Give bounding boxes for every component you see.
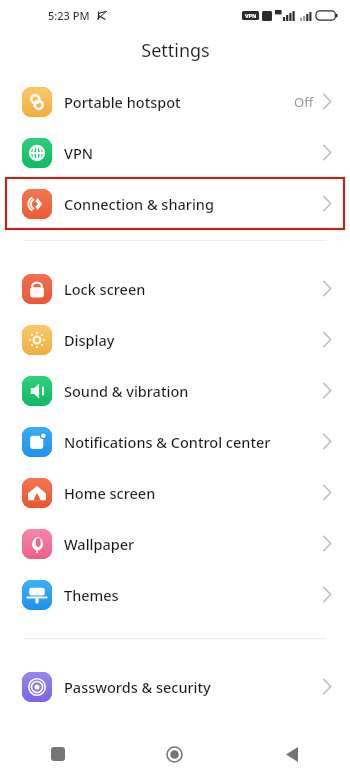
button[interactable]: Notifications & Control center [0,416,350,467]
staticText: Connection & sharing [64,194,214,214]
staticText: Settings [141,38,210,63]
staticText: Notifications & Control center [64,432,271,452]
button[interactable]: Display [0,314,350,365]
button[interactable]: Connection & sharing [6,178,344,229]
staticText: Passwords & security [64,677,211,697]
button[interactable]: Themes [0,569,350,620]
staticText: Portable hotspot [64,92,181,112]
button[interactable]: Sound & vibration [0,365,350,416]
staticText: VPN [64,143,94,163]
button[interactable]: Passwords & security [0,661,350,712]
staticText: Sound & vibration [64,381,189,401]
button[interactable]: VPN [0,127,350,178]
button[interactable]: Recent apps [0,730,116,778]
staticText: Wallpaper [64,534,135,554]
staticText: Themes [64,585,119,605]
staticText: Off [294,93,314,111]
button[interactable]: Home [116,730,233,778]
button[interactable]: Portable hotspot [0,76,350,127]
staticText: VPN [245,12,257,19]
button[interactable]: Home screen [0,467,350,518]
staticText: Lock screen [64,279,146,299]
button[interactable]: Back [233,730,350,778]
staticText: Display [64,330,115,350]
button[interactable]: Lock screen [0,263,350,314]
button[interactable]: Wallpaper [0,518,350,569]
staticText: 5:23 PM [48,8,90,23]
staticText: Home screen [64,483,156,503]
